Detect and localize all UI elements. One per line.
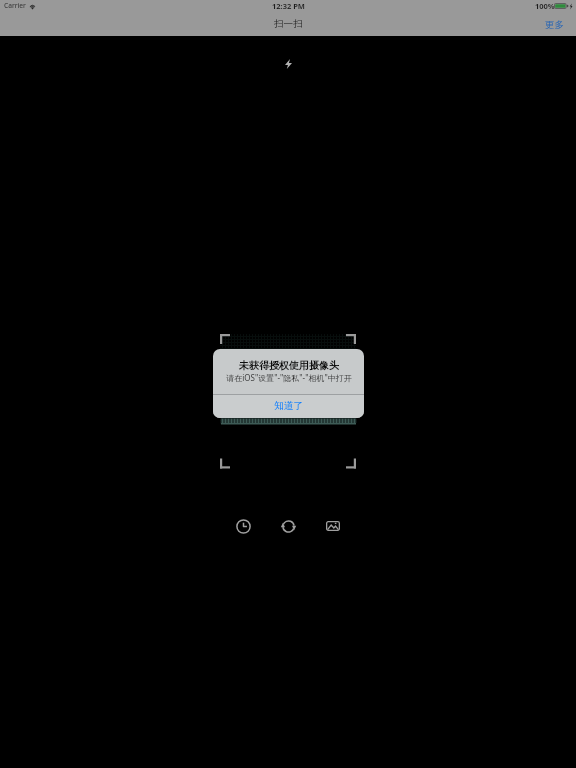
button[interactable]: Scan history (229, 512, 257, 540)
button[interactable]: Switch camera (274, 512, 302, 540)
staticText: 100% (535, 1, 555, 11)
button[interactable]: Choose from gallery (319, 512, 347, 540)
staticText: 扫一扫 (274, 18, 303, 30)
staticText: 知道了 (274, 400, 304, 412)
button[interactable]: 更多 (533, 16, 576, 32)
button[interactable]: Toggle flash (274, 50, 302, 78)
staticText: 更多 (545, 19, 564, 29)
staticText: 请在iOS"设置"-"隐私"-"相机"中打开 (226, 372, 352, 383)
button[interactable]: 知道了 (213, 395, 364, 418)
staticText: 未获得授权使用摄像头 (239, 359, 339, 372)
staticText: 12:32 PM (272, 1, 305, 11)
staticText: Carrier (4, 1, 26, 10)
